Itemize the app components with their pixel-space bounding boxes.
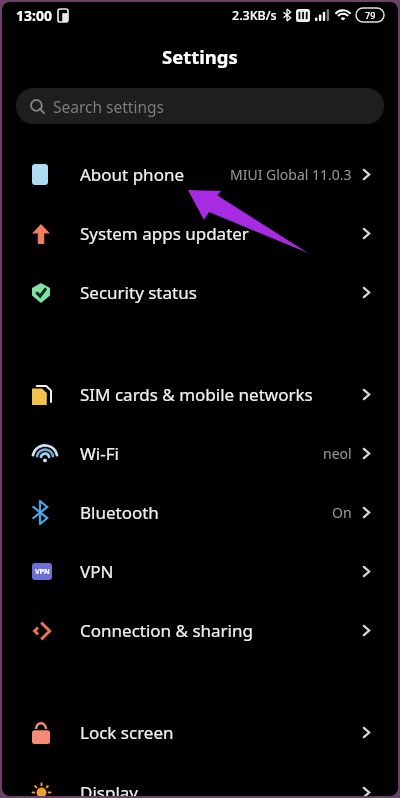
staticText: About phone [80, 163, 185, 186]
staticText: neol [323, 444, 352, 463]
staticText: VPN [35, 567, 50, 577]
staticText: Connection & sharing [80, 619, 253, 642]
staticText: Wi-Fi [80, 442, 119, 465]
staticText: 2.3KB/s [232, 7, 277, 24]
button[interactable]: About phone [2, 145, 398, 204]
button[interactable]: System apps updater [2, 204, 398, 263]
staticText: On [332, 503, 352, 522]
button[interactable]: Bluetooth [2, 483, 398, 542]
staticText: VPN [80, 560, 114, 583]
staticText: MIUI Global 11.0.3 [230, 165, 352, 184]
button[interactable]: Connection & sharing [2, 601, 398, 660]
button[interactable]: Lock screen [2, 703, 398, 762]
staticText: 79 [365, 9, 376, 21]
button[interactable]: VPN [2, 542, 398, 601]
staticText: Display [80, 781, 138, 796]
button[interactable]: Wi-Fi [2, 424, 398, 483]
button[interactable]: SIM cards & mobile networks [2, 365, 398, 424]
button[interactable]: Security status [2, 263, 398, 322]
button[interactable]: Search settings [16, 88, 384, 124]
staticText: Lock screen [80, 721, 174, 744]
staticText: Bluetooth [80, 501, 159, 524]
staticText: System apps updater [80, 222, 249, 245]
staticText: Security status [80, 281, 197, 304]
button[interactable]: Display [2, 763, 398, 796]
staticText: 13:00 [16, 6, 52, 25]
staticText: Settings [162, 44, 238, 69]
staticText: Search settings [53, 96, 164, 117]
staticText: SIM cards & mobile networks [80, 383, 313, 406]
